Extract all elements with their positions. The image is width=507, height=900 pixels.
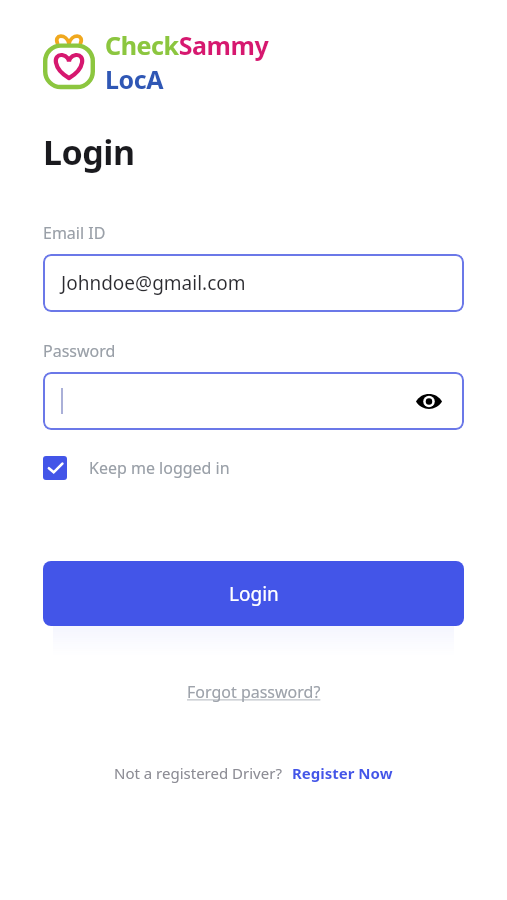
button[interactable]: Johndoe@gmail.com: [43, 254, 464, 312]
staticText: CheckSammy: [105, 28, 269, 62]
staticText: Keep me logged in: [89, 457, 230, 479]
button[interactable]: Login: [43, 561, 464, 626]
staticText: Register Now: [292, 763, 393, 783]
button[interactable]: Keep me logged in: [43, 456, 230, 480]
staticText: Not a registered Driver?: [114, 763, 282, 783]
button[interactable]: Forgot password?: [181, 677, 327, 707]
staticText: Login: [229, 581, 279, 607]
button[interactable]: Show password: [43, 372, 464, 430]
staticText: Email ID: [43, 222, 106, 244]
button[interactable]: Show password: [412, 384, 446, 418]
staticText: Johndoe@gmail.com: [61, 270, 246, 296]
staticText: Password: [43, 340, 116, 362]
button[interactable]: Register Now: [292, 763, 393, 783]
staticText: LocA: [105, 62, 164, 96]
staticText: Forgot password?: [187, 681, 321, 703]
staticText: Login: [43, 129, 135, 175]
